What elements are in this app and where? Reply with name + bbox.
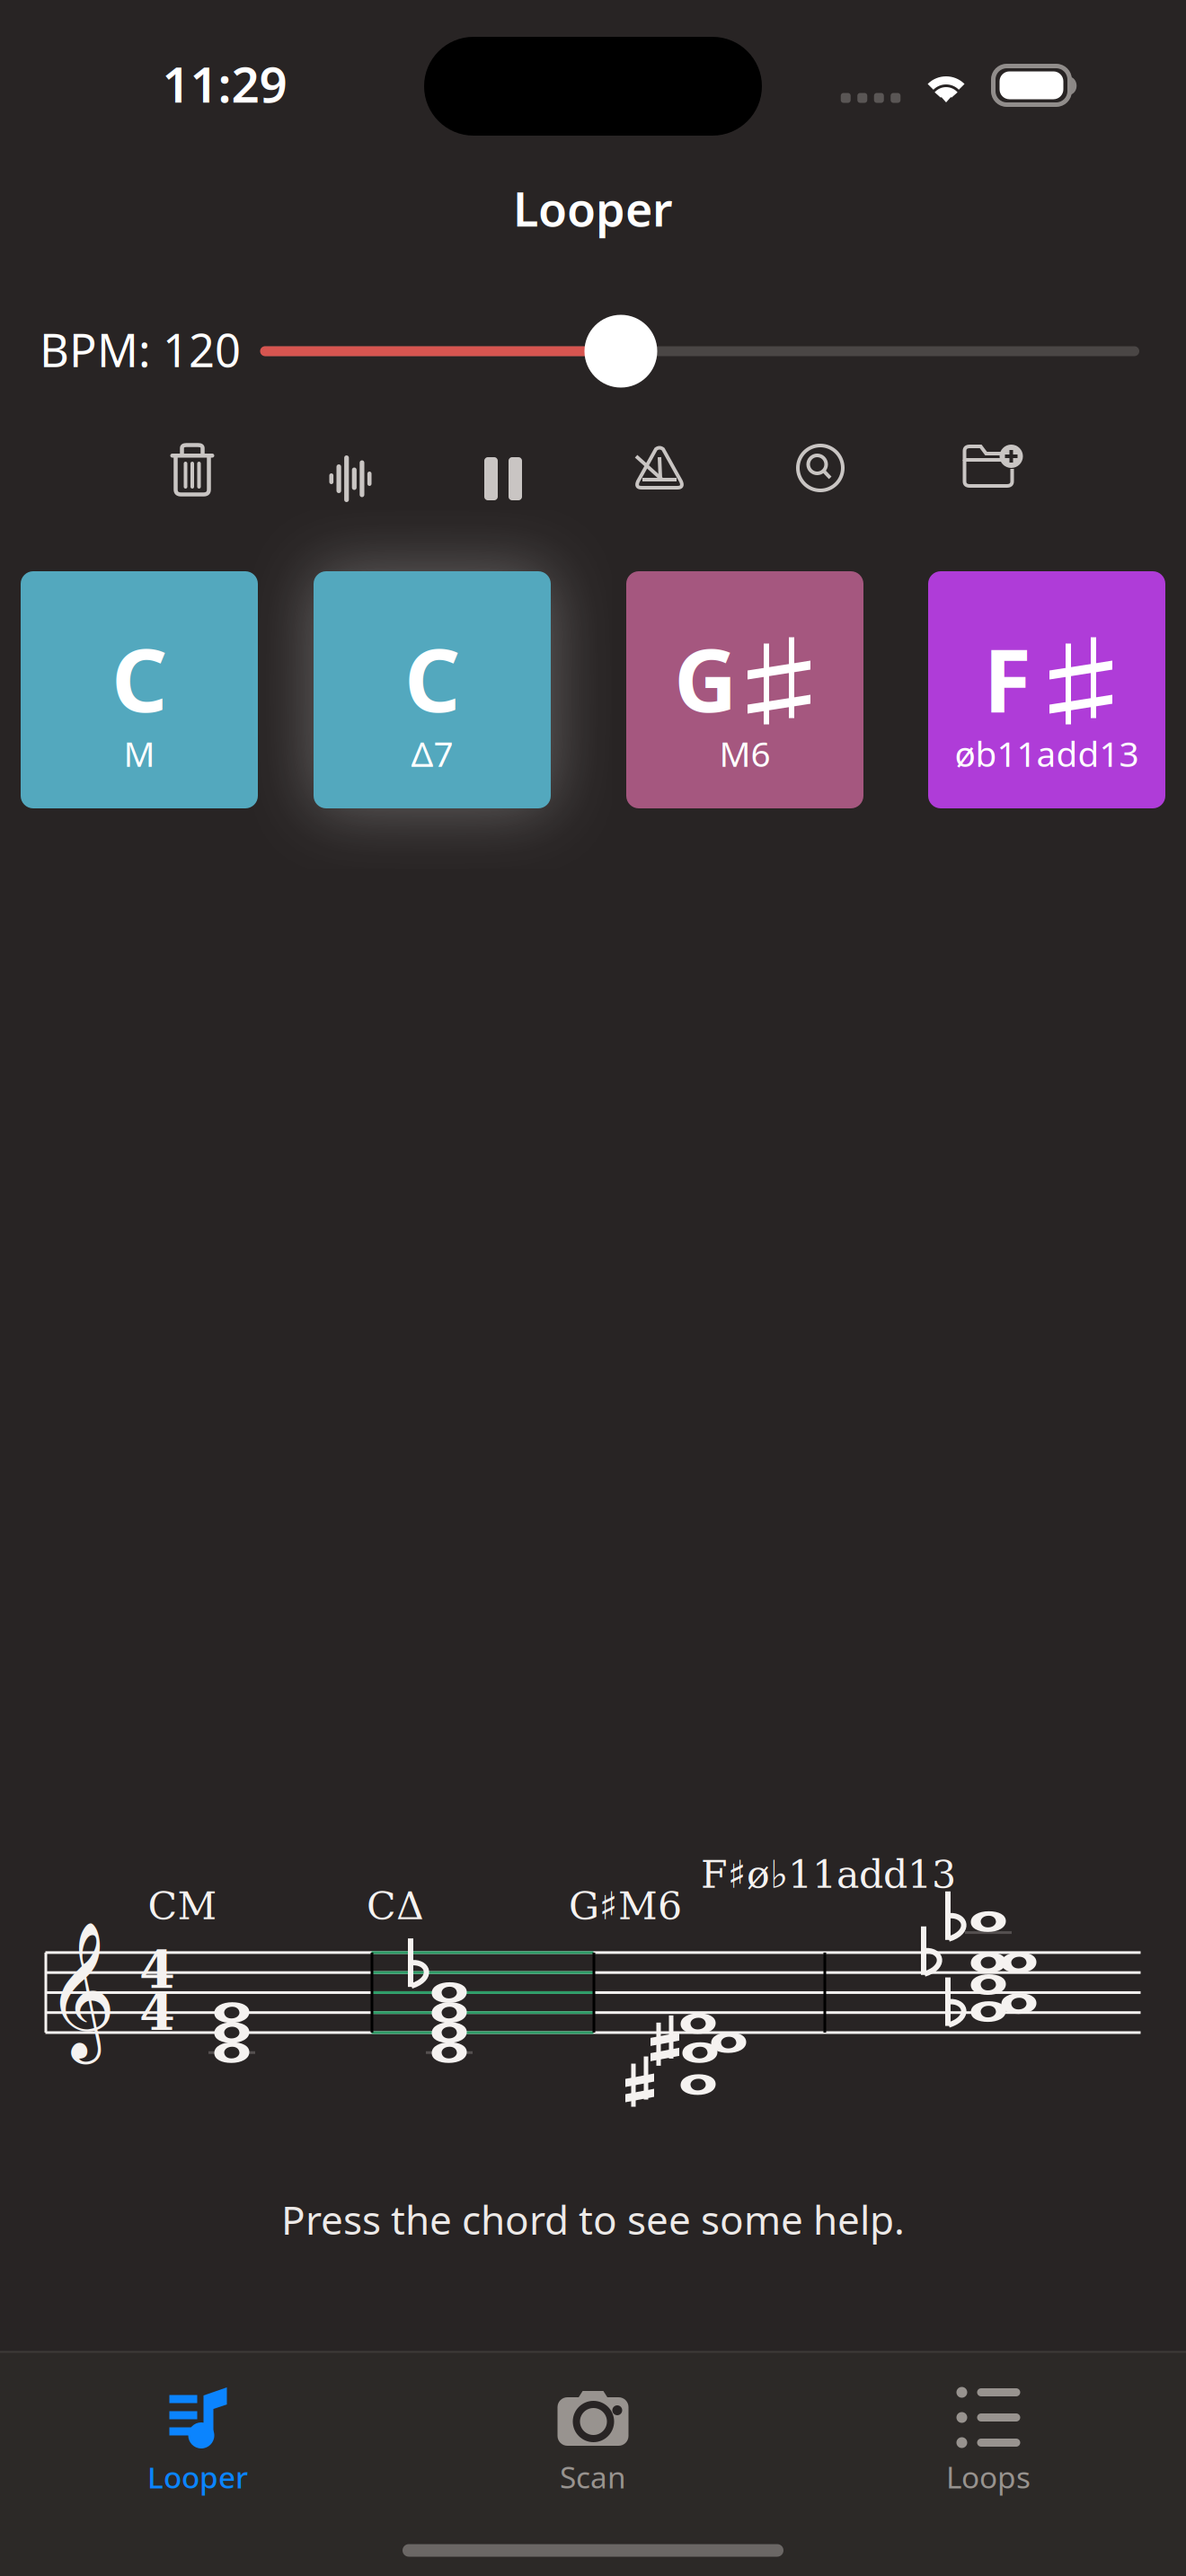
button[interactable]: C [314,571,551,808]
button[interactable]: Search [797,445,844,513]
staticText: F♯ø♭11add13 [701,1852,956,1897]
button[interactable]: Metronome [634,445,685,513]
staticText: 11:29 [162,51,287,116]
button[interactable]: Loops [791,2365,1186,2509]
staticText: 4 [139,1982,175,2042]
button[interactable]: New folder [963,445,1014,513]
staticText: F [983,620,1031,736]
staticText: G [674,620,737,736]
button[interactable]: F [928,571,1165,808]
button[interactable]: Scan [395,2365,791,2509]
staticText: Press the chord to see some help. [281,2193,905,2246]
button[interactable]: Delete [170,445,214,513]
staticText: C [404,620,460,736]
staticText: Δ7 [411,730,453,776]
button[interactable]: Pause [484,445,522,513]
staticText: 4 [139,1940,175,2000]
staticText: Scan [560,2457,626,2497]
button[interactable]: Waveform [329,445,372,513]
staticText: CM [148,1884,217,1928]
staticText: C [111,620,167,736]
staticText: G♯M6 [569,1884,682,1928]
staticText: M [124,730,155,776]
button[interactable]: Looper [0,2365,395,2509]
staticText: Looper [147,2457,248,2497]
staticText: Looper [513,177,673,239]
button[interactable]: C [21,571,258,808]
staticText: CΔ [367,1884,424,1928]
staticText: M6 [719,730,770,776]
staticText: Loops [946,2457,1031,2497]
button[interactable]: G [626,571,863,808]
staticText: BPM: 120 [40,319,241,380]
staticText: øb11add13 [955,730,1139,776]
staticText: 𝄞 [46,1935,116,2054]
